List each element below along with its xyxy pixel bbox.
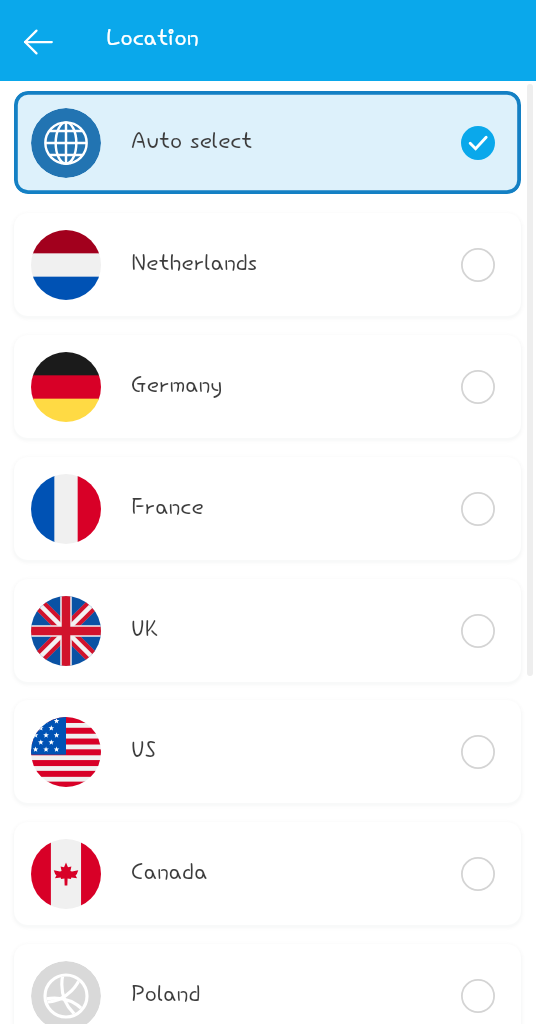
button[interactable]: Canada: [14, 822, 521, 925]
button[interactable]: Poland: [14, 944, 521, 1024]
staticText: Germany: [131, 371, 223, 403]
button[interactable]: UK: [14, 579, 521, 682]
button[interactable]: Netherlands: [14, 213, 521, 316]
button[interactable]: Back: [14, 18, 62, 66]
button[interactable]: Germany: [14, 335, 521, 438]
staticText: Netherlands: [131, 249, 258, 281]
button[interactable]: Auto select: [14, 91, 521, 194]
staticText: UK: [131, 615, 159, 647]
button[interactable]: US: [14, 700, 521, 803]
staticText: US: [131, 736, 157, 768]
staticText: Auto select: [131, 127, 253, 159]
staticText: Canada: [131, 858, 208, 890]
staticText: Poland: [131, 980, 201, 1012]
staticText: Location: [106, 24, 199, 56]
button[interactable]: France: [14, 457, 521, 560]
staticText: France: [131, 493, 204, 525]
